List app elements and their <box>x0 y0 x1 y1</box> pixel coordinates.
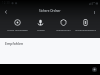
button[interactable]: Back <box>1 7 10 16</box>
staticText: Diktier <box>37 28 45 31</box>
button[interactable]: Diktier <box>29 19 52 31</box>
button[interactable]: Tresor hinzufügen <box>6 19 29 31</box>
staticText: 12:30 ● ● <box>2 1 18 5</box>
staticText: Empfohlen <box>5 41 24 46</box>
staticText: Datenschutz <box>56 28 71 31</box>
staticText: Sicherungskopie erst <box>75 28 96 31</box>
staticText: Sichere Ordner <box>39 9 61 13</box>
button[interactable]: More options <box>92 67 97 72</box>
staticText: Tresor hinzufügen <box>7 28 28 31</box>
button[interactable]: Sicherungskopie erst <box>75 19 96 31</box>
button[interactable]: Datenschutz <box>52 19 75 31</box>
button[interactable]: More options <box>90 8 98 16</box>
